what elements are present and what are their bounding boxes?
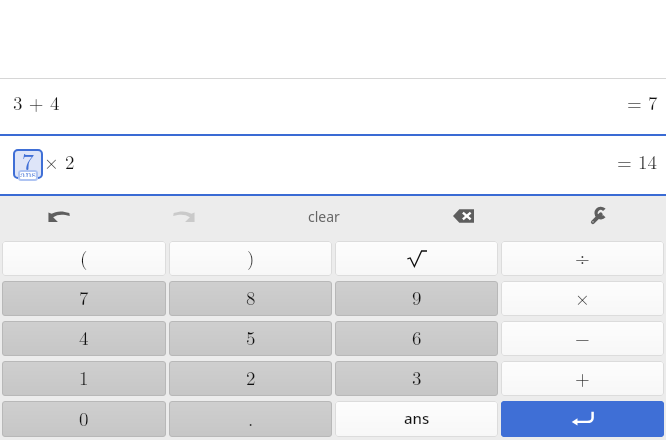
button[interactable]: ) <box>169 241 332 276</box>
button[interactable]: 1 <box>2 361 166 396</box>
staticText: × 2 <box>44 148 75 175</box>
button[interactable]: 9 <box>335 281 498 316</box>
staticText: ( <box>80 244 88 271</box>
button[interactable]: ( <box>2 241 166 276</box>
staticText: 3 + 4 <box>13 89 60 116</box>
staticText: ÷ <box>575 244 590 271</box>
staticText: 1 <box>79 364 89 391</box>
button[interactable]: 8 <box>169 281 332 316</box>
button[interactable]: Backspace <box>397 196 530 236</box>
staticText: 3 <box>412 364 422 391</box>
button[interactable]: 5 <box>169 321 332 356</box>
staticText: 9 <box>412 284 422 311</box>
button[interactable] <box>501 401 664 437</box>
button[interactable]: × <box>501 281 664 316</box>
button[interactable]: 7 <box>2 281 166 316</box>
button[interactable]: Settings <box>530 196 666 236</box>
staticText: 0 <box>79 405 89 432</box>
staticText: + <box>575 364 590 391</box>
staticText: clear <box>308 207 340 226</box>
staticText: ) <box>247 244 255 271</box>
staticText: = 14 <box>617 148 658 175</box>
button[interactable]: 7 <box>0 136 666 194</box>
staticText: 2 <box>246 364 256 391</box>
button[interactable]: ans <box>335 401 498 437</box>
staticText: 7 <box>22 143 34 173</box>
button[interactable]: 3 + 4 <box>0 79 666 134</box>
button[interactable]: . <box>169 401 332 437</box>
staticText: 7 <box>79 284 89 311</box>
staticText: . <box>248 405 254 432</box>
staticText: ans <box>404 408 430 428</box>
button[interactable]: 3 <box>335 361 498 396</box>
button[interactable]: 6 <box>335 321 498 356</box>
button[interactable]: Redo <box>117 196 250 236</box>
button[interactable]: ÷ <box>501 241 664 276</box>
button[interactable]: 2 <box>169 361 332 396</box>
staticText: 4 <box>79 324 89 351</box>
button[interactable]: clear <box>250 196 397 236</box>
staticText: 8 <box>246 284 256 311</box>
staticText: 5 <box>246 324 256 351</box>
button[interactable] <box>335 241 498 276</box>
button[interactable]: + <box>501 361 664 396</box>
staticText: × <box>575 284 590 311</box>
staticText: 6 <box>412 324 422 351</box>
staticText: ans <box>20 166 36 177</box>
button[interactable]: 4 <box>2 321 166 356</box>
staticText: − <box>575 324 590 351</box>
staticText: = 7 <box>627 89 658 116</box>
button[interactable]: Undo <box>0 196 117 236</box>
button[interactable]: 0 <box>2 401 166 437</box>
button[interactable]: − <box>501 321 664 356</box>
